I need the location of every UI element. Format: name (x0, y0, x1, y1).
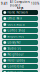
staticText: 9:41 (1, 2, 8, 5)
staticText: Home Network (7, 11, 27, 14)
button[interactable]: Studio 5G (2, 46, 38, 51)
staticText: Hotel Lobby (7, 59, 24, 62)
button[interactable]: Backup Link (2, 70, 38, 72)
button[interactable]: Coffee Shop (2, 28, 38, 33)
button[interactable]: Conference (2, 64, 38, 69)
staticText: Office Wi-Fi (7, 17, 22, 20)
button[interactable]: Guest Access (2, 22, 38, 27)
staticText: Keys (17, 6, 23, 10)
staticText: Conference (7, 65, 24, 68)
staticText: Airport Free (7, 35, 24, 38)
staticText: Coffee Shop (7, 29, 25, 32)
button[interactable]: Neighbour (2, 52, 38, 57)
staticText: Backup Link (7, 71, 22, 72)
button[interactable]: Airport Free (2, 34, 38, 39)
staticText: Library Net (7, 41, 21, 44)
button[interactable]: Library Net (2, 40, 38, 45)
button[interactable]: Home Network (2, 10, 38, 15)
staticText: All Computers Blocked (9, 0, 29, 7)
staticText: 100% (31, 2, 39, 5)
button[interactable]: Hotel Lobby (2, 58, 38, 63)
button[interactable]: Office Wi-Fi (2, 16, 38, 21)
staticText: Studio 5G (7, 47, 21, 50)
staticText: Neighbour (7, 53, 23, 56)
staticText: Guest Access (7, 23, 24, 26)
